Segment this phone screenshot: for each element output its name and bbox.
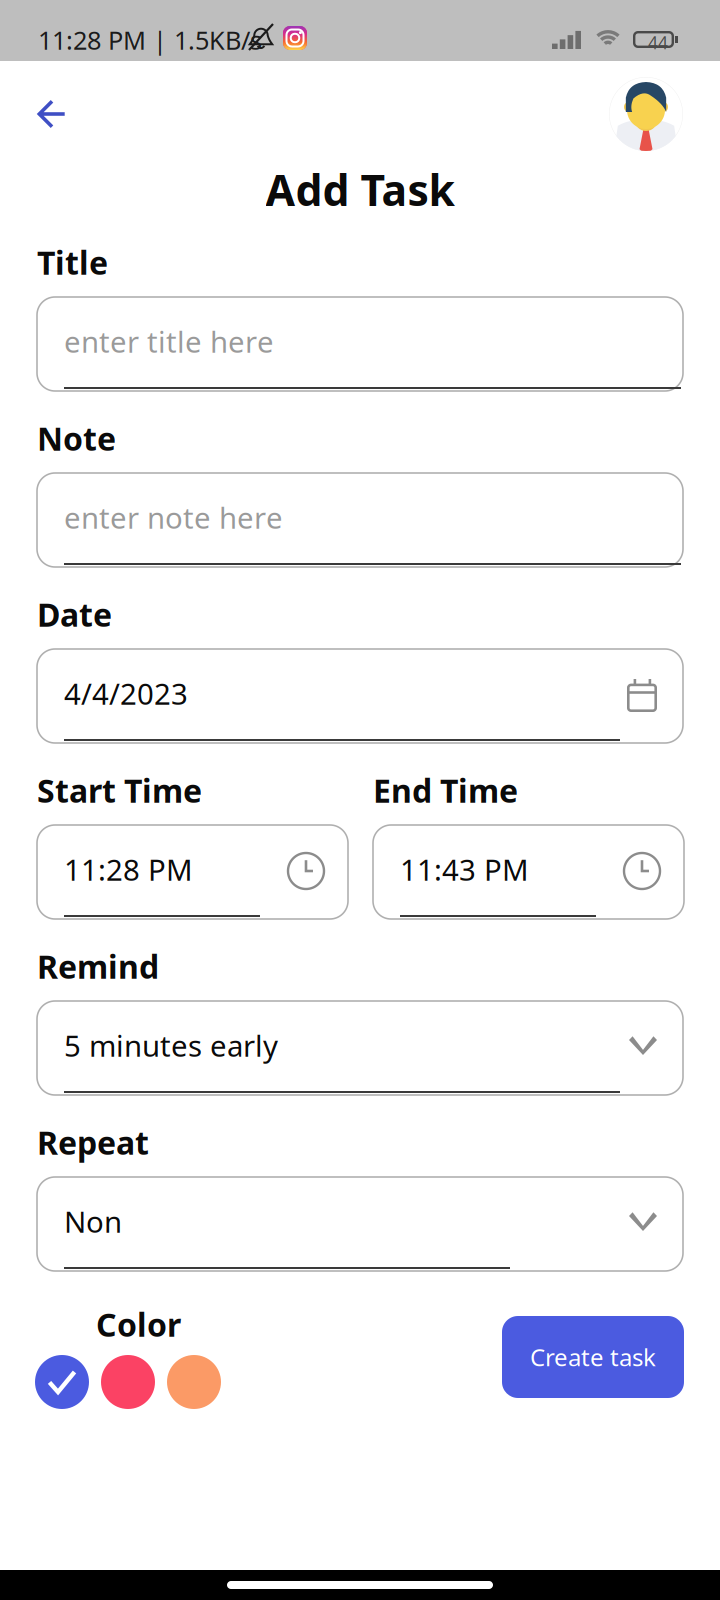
staticText: 4/4/2023 (64, 674, 188, 713)
staticText: Date (37, 593, 112, 635)
staticText: 11:28 PM (64, 850, 193, 889)
button[interactable]: Blue colour (35, 1355, 89, 1409)
staticText: Start Time (37, 769, 202, 811)
staticText: Repeat (37, 1121, 149, 1163)
staticText: 11:28 PM | 1.5KB/s (38, 23, 262, 57)
staticText: Title (37, 241, 108, 283)
staticText: Color (96, 1303, 181, 1345)
button[interactable]: Back (17, 79, 86, 148)
staticText: Add Task (265, 161, 454, 218)
button[interactable]: Orange colour (167, 1355, 221, 1409)
staticText: 11:43 PM (400, 850, 529, 889)
staticText: End Time (373, 769, 518, 811)
staticText: Remind (37, 945, 159, 987)
staticText: 44 (648, 31, 668, 54)
staticText: enter note here (64, 498, 283, 537)
staticText: Create task (530, 1341, 656, 1373)
button[interactable]: Create task (502, 1316, 684, 1398)
staticText: 5 minutes early (64, 1026, 278, 1065)
staticText: enter title here (64, 322, 274, 361)
staticText: Note (37, 417, 116, 459)
button[interactable]: Profile (609, 77, 683, 151)
staticText: Non (64, 1202, 122, 1241)
button[interactable]: Pink colour (101, 1355, 155, 1409)
